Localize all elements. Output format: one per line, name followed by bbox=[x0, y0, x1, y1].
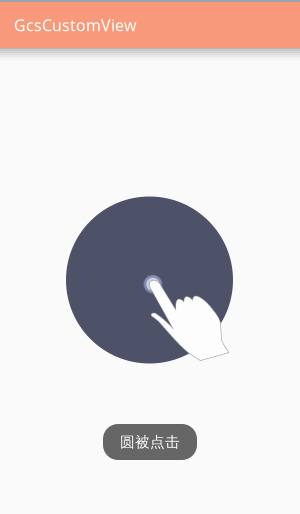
button[interactable]: 圆被点击 bbox=[103, 424, 197, 460]
staticText: 圆被点击 bbox=[120, 433, 180, 451]
staticText: GcsCustomView bbox=[14, 14, 137, 36]
